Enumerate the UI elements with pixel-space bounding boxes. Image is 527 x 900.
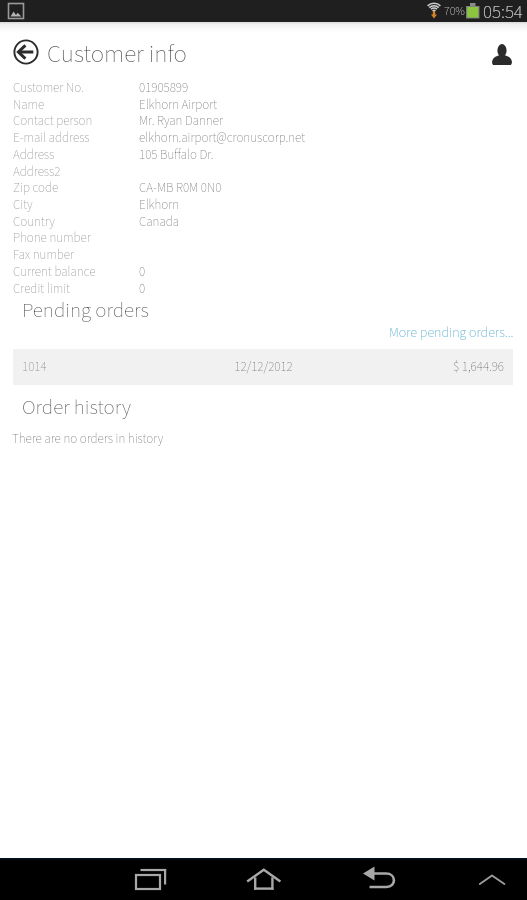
staticText: Pending orders	[22, 295, 149, 325]
button[interactable]: Current balance	[0, 263, 527, 280]
staticText: Current balance	[13, 263, 139, 280]
staticText: Fax number	[13, 246, 139, 263]
button[interactable]: Customer No.	[0, 79, 527, 96]
staticText: E-mail address	[13, 129, 139, 146]
staticText: Credit limit	[13, 280, 139, 297]
staticText: Country	[13, 213, 139, 230]
staticText: 70%	[444, 3, 465, 20]
staticText: Canada	[139, 213, 180, 230]
button[interactable]: Name	[0, 96, 527, 113]
button[interactable]: Contact	[482, 34, 522, 74]
button[interactable]: Contact person	[0, 112, 527, 129]
button[interactable]: Country	[0, 213, 527, 230]
button[interactable]: Recent apps	[129, 858, 177, 900]
staticText: 05:54	[483, 0, 523, 21]
staticText: Elkhorn Airport	[139, 96, 218, 113]
staticText: elkhorn.airport@cronuscorp.net	[139, 129, 306, 146]
staticText: Customer No.	[13, 79, 139, 96]
staticText: 01905899	[139, 79, 189, 96]
staticText: Order history	[22, 392, 131, 422]
button[interactable]: City	[0, 196, 527, 213]
button[interactable]: More pending orders...	[389, 323, 527, 343]
staticText: Customer info	[47, 36, 187, 72]
button[interactable]: Address	[0, 146, 527, 163]
button[interactable]: Credit limit	[0, 280, 527, 297]
button[interactable]: 1014	[13, 349, 513, 385]
staticText: Elkhorn	[139, 196, 180, 213]
staticText: Contact person	[13, 112, 139, 129]
staticText: Name	[13, 96, 139, 113]
staticText: There are no orders in history	[12, 430, 164, 449]
staticText: 0	[139, 263, 146, 280]
button[interactable]: E-mail address	[0, 129, 527, 146]
button[interactable]: Back	[355, 858, 403, 900]
staticText: 1014	[22, 358, 182, 377]
staticText: Address	[13, 146, 139, 163]
button[interactable]: Zip code	[0, 179, 527, 196]
staticText: 105 Buffalo Dr.	[139, 146, 214, 163]
staticText: City	[13, 196, 139, 213]
button[interactable]: Address2	[0, 163, 527, 180]
button[interactable]: Hide keyboard	[468, 858, 516, 900]
staticText: Address2	[13, 163, 139, 180]
staticText: Zip code	[13, 179, 139, 196]
staticText: Phone number	[13, 229, 139, 246]
button[interactable]: Phone number	[0, 229, 527, 246]
staticText: CA-MB R0M 0N0	[139, 179, 222, 196]
button[interactable]: Home	[241, 858, 289, 900]
button[interactable]: Fax number	[0, 246, 527, 263]
staticText: Mr. Ryan Danner	[139, 112, 223, 129]
staticText: 0	[139, 280, 146, 297]
staticText: 12/12/2012	[178, 358, 349, 377]
staticText: $ 1,644.96	[353, 358, 504, 377]
button[interactable]: Back	[4, 30, 48, 74]
